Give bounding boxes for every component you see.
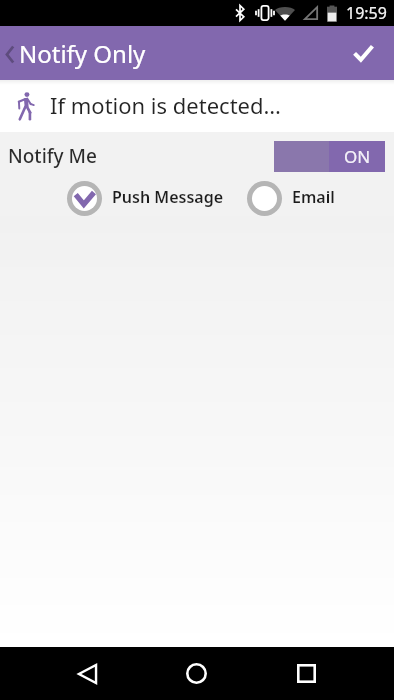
button[interactable]: Push Message	[67, 181, 224, 216]
staticText: Notify Me	[8, 143, 97, 169]
staticText: Push Message	[112, 186, 224, 208]
button[interactable]: Email	[247, 181, 335, 216]
button[interactable]: Back	[68, 654, 107, 693]
staticText: ON	[344, 145, 371, 168]
button[interactable]: Confirm	[346, 26, 394, 80]
button[interactable]: If motion is detected…	[0, 80, 394, 132]
staticText: 19:59	[346, 2, 387, 24]
staticText: If motion is detected…	[50, 90, 281, 120]
button[interactable]: ON	[274, 141, 385, 172]
button[interactable]: Home	[177, 654, 216, 693]
button[interactable]: Back	[0, 26, 20, 80]
staticText: Email	[292, 186, 335, 208]
button[interactable]: Recents	[287, 654, 326, 693]
staticText: Notify Only	[19, 37, 146, 70]
